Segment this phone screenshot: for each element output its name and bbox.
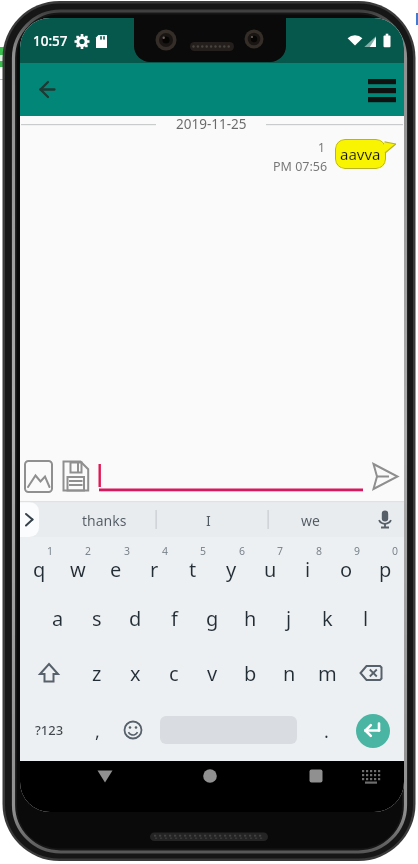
button[interactable] [368,461,400,493]
staticText: y [226,556,237,583]
staticText: m [318,660,337,687]
button[interactable]: i [289,549,327,589]
staticText: thanks [82,511,127,530]
button[interactable]: aavva [335,139,386,169]
button[interactable]: p [366,549,404,589]
staticText: 4 [162,544,169,558]
button[interactable]: e [97,549,135,589]
button[interactable]: d [116,596,154,640]
staticText: z [92,660,102,687]
staticText: d [129,605,142,632]
staticText: 5 [200,544,207,558]
staticText: 0 [392,544,399,558]
button[interactable]: h [231,596,269,640]
button[interactable]: ?123 [24,708,74,752]
button[interactable]: j [270,596,308,640]
button[interactable] [356,714,390,748]
staticText: 1 [318,139,325,155]
button[interactable]: we [270,505,350,535]
button[interactable]: I [168,505,248,535]
staticText: 3 [124,544,131,558]
button[interactable]: thanks [59,505,149,535]
button[interactable]: l [347,596,385,640]
button[interactable]: z [78,651,116,695]
button[interactable] [360,71,404,109]
staticText: i [305,556,311,583]
staticText: v [207,660,218,687]
button[interactable] [80,762,130,802]
button[interactable]: o [327,549,365,589]
staticText: we [301,511,320,530]
staticText: 7 [277,544,284,558]
staticText: w [70,556,86,583]
button[interactable] [20,502,39,537]
staticText: n [283,660,296,687]
button[interactable]: t [174,549,212,589]
button[interactable]: n [270,651,308,695]
staticText: h [244,605,257,632]
staticText: j [286,605,292,632]
button[interactable]: c [155,651,193,695]
button[interactable]: x [116,651,154,695]
staticText: 9 [354,544,361,558]
button[interactable] [185,762,235,802]
staticText: 10:57 [33,32,68,50]
button[interactable] [58,461,92,495]
staticText: . [324,719,329,744]
button[interactable] [350,762,390,802]
button[interactable] [96,461,366,495]
staticText: 6 [239,544,246,558]
staticText: a [52,605,64,632]
staticText: ?123 [35,721,64,739]
button[interactable] [28,71,74,109]
staticText: p [379,556,392,583]
staticText: 2019-11-25 [176,115,247,133]
button[interactable]: v [193,651,231,695]
staticText: f [171,605,178,632]
button[interactable]: q [20,549,58,589]
button[interactable]: w [59,549,97,589]
button[interactable]: b [231,651,269,695]
staticText: 8 [316,544,323,558]
staticText: c [169,660,179,687]
staticText: 2 [85,544,92,558]
staticText: x [130,660,141,687]
button[interactable]: g [193,596,231,640]
button[interactable]: . [311,709,341,753]
button[interactable]: u [251,549,289,589]
staticText: r [150,556,159,583]
staticText: l [363,605,369,632]
staticText: 1 [47,544,54,558]
staticText: q [33,556,46,583]
staticText: s [92,605,102,632]
button[interactable]: m [308,651,346,695]
button[interactable] [20,461,56,495]
staticText: PM 07:56 [273,158,328,174]
button[interactable]: y [212,549,250,589]
staticText: k [322,605,333,632]
staticText: , [95,719,100,744]
button[interactable]: a [39,596,77,640]
staticText: b [244,660,257,687]
staticText: e [110,556,122,583]
button[interactable]: s [78,596,116,640]
button[interactable]: r [135,549,173,589]
staticText: t [189,556,197,583]
button[interactable]: f [155,596,193,640]
button[interactable]: k [308,596,346,640]
button[interactable] [291,762,341,802]
staticText: g [206,605,219,632]
staticText: I [206,511,211,530]
staticText: u [264,556,277,583]
button[interactable]: , [82,709,112,753]
staticText: o [340,556,353,583]
staticText: aavva [340,144,381,164]
